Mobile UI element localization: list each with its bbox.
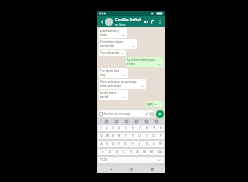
button[interactable]: Send bbox=[156, 110, 164, 118]
staticText: Q bbox=[100, 134, 103, 138]
button[interactable]: Recents bbox=[145, 166, 159, 173]
staticText: Y si tenía cita hoy bbox=[100, 69, 122, 77]
button[interactable]: W bbox=[104, 133, 110, 139]
button[interactable]: A bbox=[98, 141, 104, 147]
staticText: ↵ bbox=[158, 158, 161, 162]
button[interactable]: Video call bbox=[142, 16, 149, 27]
button[interactable]: B bbox=[134, 149, 141, 155]
button[interactable]: G bbox=[122, 141, 129, 147]
button[interactable]: Lo de ese a caché bbox=[99, 90, 128, 100]
button[interactable]: La última llamó por el rev bbox=[126, 57, 163, 67]
button[interactable]: Cecilia Infiel bbox=[115, 17, 142, 27]
button[interactable]: E bbox=[110, 133, 116, 139]
button[interactable]: L bbox=[150, 141, 157, 147]
staticText: ⌫ bbox=[157, 150, 162, 154]
button[interactable]: H bbox=[129, 141, 136, 147]
button[interactable]: Y si tenía cita hoy bbox=[99, 68, 128, 78]
staticText: F bbox=[118, 142, 120, 146]
button[interactable]: Tool 3 bbox=[134, 119, 138, 123]
staticText: 7 bbox=[139, 126, 141, 130]
button[interactable]: 1 bbox=[98, 125, 104, 131]
button[interactable]: 0 bbox=[157, 125, 164, 131]
button[interactable]: Back bbox=[99, 19, 105, 25]
button[interactable]: N bbox=[141, 149, 148, 155]
staticText: 9:0 bbox=[123, 96, 127, 99]
staticText: El médico súper cachondo bbox=[100, 40, 131, 48]
button[interactable]: F bbox=[116, 141, 122, 147]
staticText: 9:0 bbox=[154, 103, 158, 106]
other: Attach bbox=[145, 112, 149, 116]
staticText: X bbox=[116, 150, 118, 154]
staticText: H bbox=[131, 142, 134, 146]
button[interactable]: Back bbox=[104, 166, 118, 173]
staticText: M bbox=[150, 150, 153, 154]
button[interactable]: M bbox=[148, 149, 155, 155]
button[interactable]: Q bbox=[98, 133, 104, 139]
button[interactable]: X bbox=[113, 149, 120, 155]
button[interactable]: planteando y todo bbox=[99, 28, 127, 38]
button[interactable]: R bbox=[116, 133, 122, 139]
button[interactable]: Home bbox=[124, 166, 138, 173]
staticText: 1 bbox=[100, 126, 102, 130]
button[interactable]: , bbox=[109, 157, 116, 163]
button[interactable]: ?123 bbox=[98, 157, 109, 163]
button[interactable]: U bbox=[136, 133, 143, 139]
staticText: S bbox=[106, 142, 108, 146]
button[interactable]: 9 bbox=[150, 125, 157, 131]
button[interactable]: 5 bbox=[122, 125, 129, 131]
staticText: J bbox=[139, 142, 140, 146]
button[interactable]: 4 bbox=[116, 125, 122, 131]
button[interactable]: J bbox=[136, 141, 143, 147]
staticText: ?123 bbox=[100, 158, 107, 162]
button[interactable]: 3 bbox=[110, 125, 116, 131]
button[interactable]: Y yo diciendo bbox=[99, 50, 126, 56]
staticText: P bbox=[160, 134, 162, 138]
button[interactable]: Escribe un mensaje bbox=[98, 110, 155, 117]
button[interactable]: El médico súper cachondo bbox=[99, 39, 137, 49]
staticText: D bbox=[112, 142, 115, 146]
button[interactable]: Tool 4 bbox=[144, 119, 148, 123]
button[interactable]: 2 bbox=[104, 125, 110, 131]
button[interactable]: . bbox=[148, 157, 154, 163]
button[interactable]: T bbox=[122, 133, 129, 139]
button[interactable]: ⇧ bbox=[98, 149, 106, 155]
staticText: 6 bbox=[132, 126, 134, 130]
staticText: K bbox=[146, 142, 148, 146]
button[interactable]: Tool 0 bbox=[104, 119, 108, 123]
button[interactable]: Z bbox=[106, 149, 113, 155]
staticText: Escribe un mensaje bbox=[104, 112, 131, 116]
button[interactable]: Call bbox=[149, 16, 156, 27]
staticText: C bbox=[122, 150, 125, 154]
button[interactable]: Y bbox=[129, 133, 136, 139]
staticText: 2 bbox=[106, 126, 108, 130]
button[interactable]: Tool 5 bbox=[154, 119, 158, 123]
button[interactable]: ⌫ bbox=[155, 149, 164, 155]
other: Camera bbox=[150, 112, 154, 116]
button[interactable]: P bbox=[157, 133, 164, 139]
staticText: en línea bbox=[115, 23, 126, 27]
staticText: 9:0 bbox=[121, 52, 125, 55]
staticText: 9 bbox=[153, 126, 155, 130]
button[interactable]: More options bbox=[156, 16, 163, 27]
button[interactable]: Tool 1 bbox=[114, 119, 118, 123]
button[interactable]: Ñ bbox=[157, 141, 164, 147]
button[interactable]: I bbox=[143, 133, 150, 139]
button[interactable]: D bbox=[110, 141, 116, 147]
button[interactable]: C bbox=[120, 149, 127, 155]
button[interactable]: V bbox=[127, 149, 134, 155]
button[interactable]: ↵ bbox=[154, 157, 164, 163]
button[interactable]: 7 bbox=[136, 125, 143, 131]
button[interactable]: 6 bbox=[129, 125, 136, 131]
button[interactable]: O bbox=[150, 133, 157, 139]
button[interactable]: jajaj bbox=[146, 101, 163, 107]
staticText: 9:0 bbox=[158, 63, 162, 66]
button[interactable]: 8 bbox=[143, 125, 150, 131]
staticText: 5 bbox=[125, 126, 127, 130]
button[interactable]: K bbox=[143, 141, 150, 147]
staticText: L bbox=[153, 142, 155, 146]
button[interactable]: Tool 2 bbox=[124, 119, 128, 123]
button[interactable]: S bbox=[104, 141, 110, 147]
staticText: B bbox=[136, 150, 139, 154]
button[interactable]: Pero solo que no protege más cachondo bbox=[99, 79, 146, 89]
